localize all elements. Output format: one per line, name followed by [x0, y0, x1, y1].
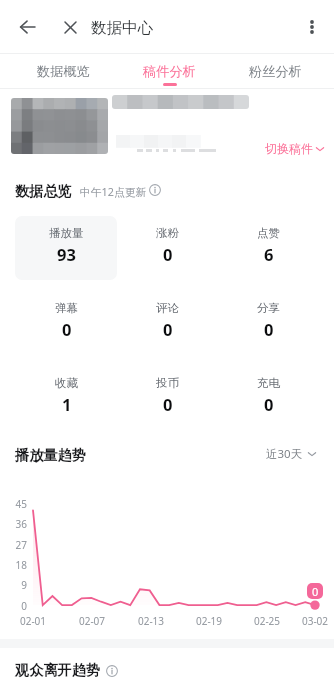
staticText: 02-13 — [131, 614, 171, 628]
staticText: 0 — [163, 393, 173, 415]
staticText: 0 — [312, 584, 319, 599]
staticText: 点赞 — [257, 226, 280, 240]
staticText: 观众离开趋势 — [15, 661, 101, 679]
staticText: 评论 — [156, 301, 179, 315]
staticText: 数据概览 — [37, 63, 90, 80]
staticText: 中午12点更新 — [80, 184, 147, 199]
staticText: 粉丝分析 — [249, 63, 302, 80]
button[interactable]: Back — [13, 13, 41, 41]
staticText: 投币 — [156, 376, 179, 390]
staticText: 36 — [0, 517, 27, 531]
button[interactable]: Info — [106, 665, 118, 677]
staticText: 45 — [0, 497, 27, 511]
staticText: 03-02 — [295, 614, 334, 628]
button[interactable]: 充电 — [218, 366, 319, 430]
staticText: 27 — [0, 538, 27, 552]
button[interactable]: 点赞 — [218, 216, 319, 280]
button[interactable]: 切换稿件 — [265, 141, 324, 156]
button[interactable]: 弹幕 — [15, 291, 117, 355]
button[interactable]: 稿件分析 — [116, 54, 222, 89]
staticText: 0 — [163, 318, 173, 340]
staticText: 播放量 — [49, 226, 84, 240]
button[interactable]: 收藏 — [15, 366, 117, 430]
staticText: 18 — [0, 558, 27, 572]
button[interactable]: 数据概览 — [10, 54, 116, 89]
staticText: 涨粉 — [156, 226, 179, 240]
button[interactable]: Info — [149, 184, 161, 196]
button[interactable]: 涨粉 — [117, 216, 218, 280]
staticText: 0 — [62, 318, 72, 340]
staticText: 弹幕 — [55, 301, 78, 315]
staticText: 02-01 — [13, 614, 53, 628]
staticText: 02-19 — [189, 614, 229, 628]
staticText: 稿件分析 — [143, 63, 196, 80]
button[interactable]: Close — [56, 13, 84, 41]
staticText: 02-25 — [247, 614, 287, 628]
button[interactable]: 投币 — [117, 366, 218, 430]
staticText: 0 — [0, 599, 27, 613]
staticText: 1 — [62, 393, 72, 415]
button[interactable]: 近30天 — [266, 446, 316, 462]
staticText: 93 — [57, 243, 76, 265]
staticText: 9 — [0, 578, 27, 592]
staticText: 播放量趋势 — [15, 446, 86, 464]
staticText: 切换稿件 — [265, 141, 313, 156]
button[interactable]: 分享 — [218, 291, 319, 355]
button[interactable]: 播放量 — [15, 216, 117, 280]
staticText: 数据中心 — [91, 18, 153, 38]
staticText: 数据总览 — [15, 182, 72, 200]
button[interactable]: More options — [298, 13, 326, 41]
staticText: 0 — [264, 393, 274, 415]
staticText: 6 — [264, 243, 274, 265]
staticText: 02-07 — [72, 614, 112, 628]
staticText: 0 — [264, 318, 274, 340]
staticText: 0 — [163, 243, 173, 265]
staticText: 近30天 — [266, 446, 303, 462]
staticText: 充电 — [257, 376, 280, 390]
button[interactable]: 评论 — [117, 291, 218, 355]
staticText: 收藏 — [55, 376, 78, 390]
staticText: 分享 — [257, 301, 280, 315]
button[interactable]: 粉丝分析 — [222, 54, 328, 89]
